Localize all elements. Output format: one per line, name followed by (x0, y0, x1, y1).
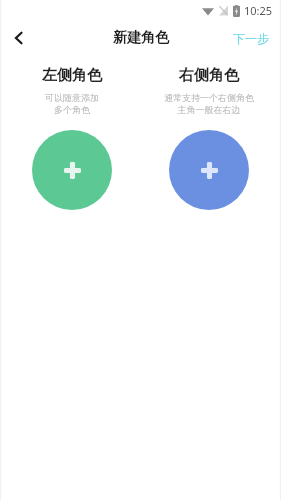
staticText: 右侧角色 (179, 66, 239, 85)
button[interactable]: Add left role (32, 130, 112, 210)
button[interactable]: Add right role (169, 130, 249, 210)
button[interactable]: Back (0, 20, 38, 56)
staticText: 通常支持一个右侧角色 主角一般在右边 (164, 92, 254, 116)
staticText: 左侧角色 (42, 66, 102, 85)
button[interactable]: 下一步 (221, 23, 281, 54)
staticText: 10:25 (244, 3, 273, 18)
staticText: 可以随意添加 多个角色 (45, 92, 99, 116)
staticText: 下一步 (233, 31, 269, 46)
staticText: 新建角色 (113, 29, 169, 47)
